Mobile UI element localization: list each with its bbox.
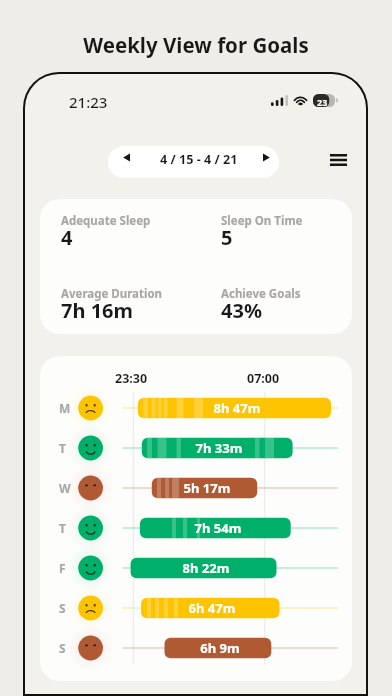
staticText: 6h 47m xyxy=(182,599,242,617)
button[interactable]: Previous week xyxy=(108,146,279,178)
staticText: 07:00 xyxy=(247,370,280,387)
staticText: 8h 47m xyxy=(207,399,267,417)
staticText: Average Duration xyxy=(61,286,163,302)
staticText: 21:23 xyxy=(69,92,108,112)
staticText: 43% xyxy=(221,297,262,324)
staticText: 4 xyxy=(61,224,73,251)
staticText: 5h 17m xyxy=(177,479,237,497)
button[interactable]: S xyxy=(40,588,352,628)
staticText: 7h 33m xyxy=(189,439,249,457)
staticText: 6h 9m xyxy=(190,639,250,657)
button[interactable]: T xyxy=(40,508,352,548)
staticText: 4 / 15 - 4 / 21 xyxy=(160,151,238,168)
staticText: 8h 22m xyxy=(176,559,236,577)
staticText: F xyxy=(59,560,66,576)
staticText: Weekly View for Goals xyxy=(0,31,392,59)
staticText: 7h 54m xyxy=(188,519,248,537)
button[interactable]: S xyxy=(40,628,352,668)
button[interactable]: T xyxy=(40,428,352,468)
staticText: T xyxy=(59,520,66,536)
staticText: Sleep On Time xyxy=(221,213,303,229)
staticText: 7h 16m xyxy=(61,297,134,324)
staticText: Achieve Goals xyxy=(221,286,301,302)
button[interactable]: Menu xyxy=(316,138,360,182)
staticText: T xyxy=(59,440,66,456)
staticText: M xyxy=(59,400,71,416)
button[interactable]: F xyxy=(40,548,352,588)
staticText: W xyxy=(59,480,71,496)
staticText: 23 xyxy=(317,96,328,108)
other: Previous week xyxy=(122,153,130,162)
staticText: S xyxy=(59,600,66,616)
staticText: Adequate Sleep xyxy=(61,213,151,229)
other: Next week xyxy=(263,153,271,162)
button[interactable]: M xyxy=(40,388,352,428)
staticText: 23:30 xyxy=(115,370,148,387)
staticText: S xyxy=(59,640,66,656)
button[interactable]: W xyxy=(40,468,352,508)
staticText: 5 xyxy=(221,224,233,251)
